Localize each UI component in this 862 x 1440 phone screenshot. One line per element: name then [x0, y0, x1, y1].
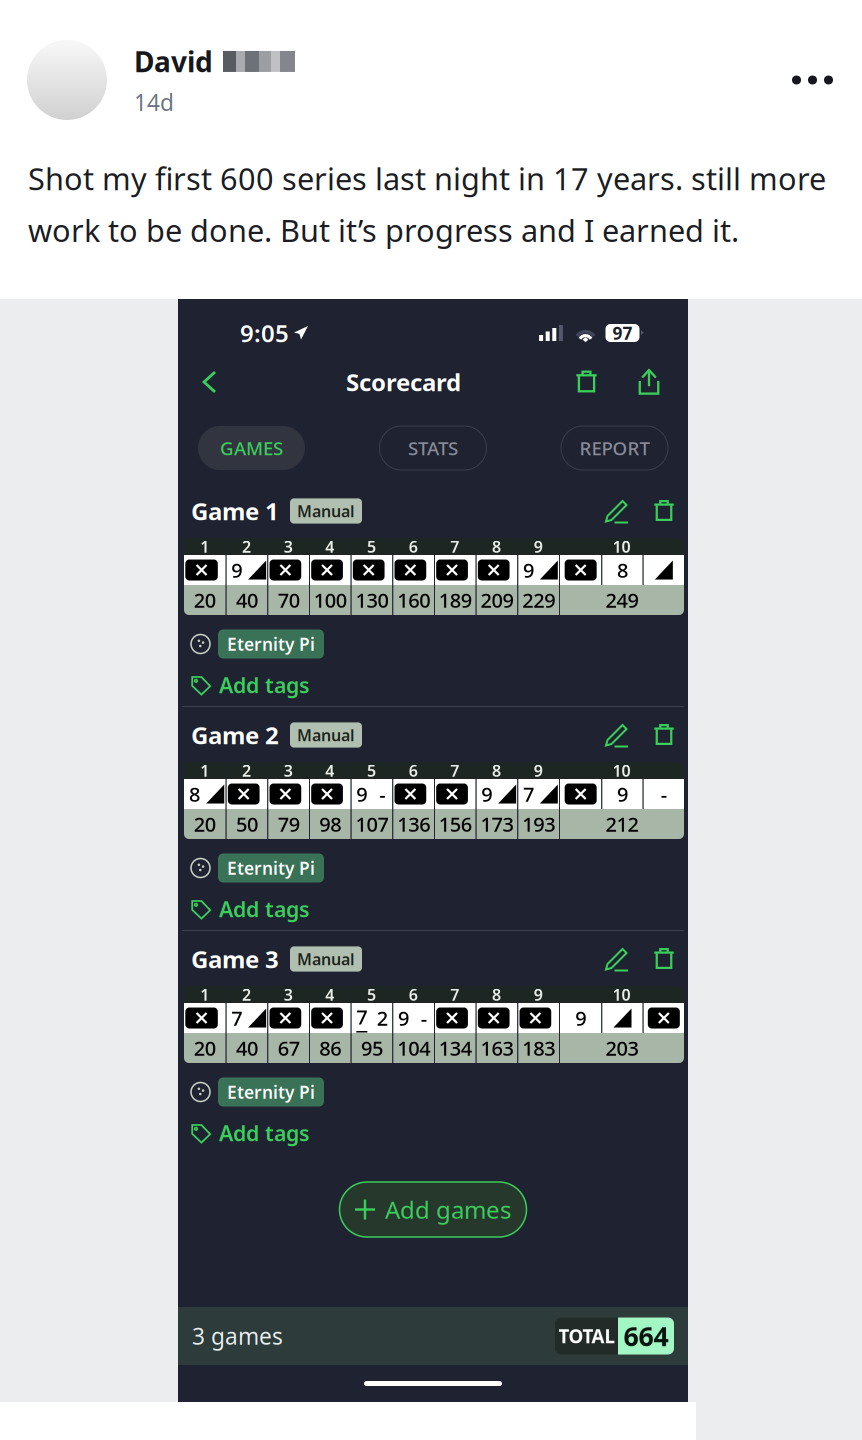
staticText: 134 — [439, 1035, 472, 1061]
staticText: Add tags — [219, 1119, 310, 1147]
button[interactable]: More options — [774, 61, 851, 98]
staticText: Manual — [297, 500, 355, 522]
staticText: 163 — [480, 1035, 513, 1061]
staticText: 4 — [325, 760, 334, 781]
staticText: 67 — [278, 1035, 300, 1061]
staticText: 40 — [236, 1035, 258, 1061]
staticText: 3 — [284, 984, 293, 1005]
staticText: 9 — [617, 781, 628, 807]
staticText: 95 — [361, 1035, 383, 1061]
staticText: Add tags — [219, 671, 310, 699]
staticText: 20 — [194, 811, 216, 837]
staticText: 7 — [450, 536, 459, 557]
staticText: 86 — [319, 1035, 341, 1061]
staticText: 8 — [617, 557, 628, 583]
staticText: 10 — [612, 984, 630, 1005]
staticText: 209 — [480, 587, 513, 613]
staticText: 98 — [319, 811, 341, 837]
staticText: TOTAL — [558, 1324, 614, 1348]
staticText: STATS — [408, 436, 458, 460]
staticText: Game 2 — [191, 719, 279, 751]
staticText: 2 — [242, 536, 251, 557]
staticText: Shot my first 600 series last night in 1… — [28, 158, 826, 199]
staticText: 5 — [367, 984, 376, 1005]
staticText: 7 — [231, 1005, 242, 1031]
button[interactable]: GAMES — [198, 426, 305, 470]
staticText: 20 — [194, 587, 216, 613]
button[interactable]: Add tags — [178, 1104, 688, 1154]
staticText: 14d — [134, 87, 174, 117]
staticText: 8 — [492, 536, 501, 557]
staticText: Eternity Pi — [227, 632, 315, 655]
staticText: 4 — [325, 536, 334, 557]
button[interactable]: Share — [638, 369, 660, 395]
staticText: 203 — [605, 1035, 638, 1061]
staticText: 130 — [355, 587, 388, 613]
staticText: 107 — [355, 811, 388, 837]
staticText: 9 — [575, 1005, 586, 1031]
staticText: 189 — [439, 587, 472, 613]
staticText: 2 — [377, 1005, 388, 1031]
staticText: 7 — [523, 781, 534, 807]
staticText: 7 — [450, 984, 459, 1005]
button[interactable]: Edit game — [604, 498, 629, 523]
staticText: David — [134, 43, 213, 80]
button[interactable]: Delete scorecard — [575, 369, 598, 395]
staticText: 5 — [367, 536, 376, 557]
staticText: 104 — [397, 1035, 430, 1061]
button[interactable]: Edit game — [604, 722, 629, 747]
staticText: 173 — [480, 811, 513, 837]
button[interactable]: Add games — [339, 1182, 526, 1237]
staticText: 3 — [284, 760, 293, 781]
staticText: 9 — [534, 760, 543, 781]
staticText: - — [379, 781, 385, 807]
staticText: 9 — [534, 536, 543, 557]
staticText: 9 — [534, 984, 543, 1005]
staticText: - — [421, 1005, 427, 1031]
staticText: Eternity Pi — [227, 1080, 315, 1103]
staticText: 1 — [200, 536, 209, 557]
staticText: 1 — [200, 760, 209, 781]
staticText: 664 — [623, 1318, 668, 1354]
staticText: 70 — [278, 587, 300, 613]
staticText: 100 — [314, 587, 347, 613]
staticText: 40 — [236, 587, 258, 613]
button[interactable]: Add tags — [178, 656, 688, 706]
staticText: 5 — [367, 760, 376, 781]
button[interactable]: Back — [178, 362, 232, 402]
staticText: 3 games — [192, 1321, 283, 1351]
button[interactable]: REPORT — [561, 426, 668, 470]
staticText: 9 — [398, 1005, 409, 1031]
staticText: Add tags — [219, 895, 310, 923]
button[interactable]: STATS — [379, 426, 486, 470]
staticText: 9 — [356, 781, 367, 807]
button[interactable]: Edit game — [604, 946, 629, 971]
staticText: 8 — [492, 984, 501, 1005]
staticText: 2 — [242, 760, 251, 781]
staticText: work to be done. But it’s progress and I… — [28, 210, 739, 250]
staticText: 193 — [522, 811, 555, 837]
staticText: 6 — [409, 536, 418, 557]
staticText: 3 — [284, 536, 293, 557]
staticText: - — [661, 781, 667, 807]
staticText: REPORT — [579, 436, 649, 460]
staticText: 2 — [242, 984, 251, 1005]
staticText: Manual — [297, 724, 355, 746]
staticText: 156 — [439, 811, 472, 837]
staticText: Eternity Pi — [227, 856, 315, 879]
staticText: Game 1 — [191, 495, 279, 527]
staticText: 50 — [236, 811, 258, 837]
staticText: 8 — [189, 781, 200, 807]
staticText: 6 — [409, 760, 418, 781]
button[interactable]: Delete game — [653, 499, 675, 523]
button[interactable]: Add tags — [178, 880, 688, 930]
staticText: 9 — [523, 557, 534, 583]
button[interactable]: Delete game — [653, 947, 675, 971]
staticText: Game 3 — [191, 943, 279, 975]
staticText: 249 — [605, 587, 638, 613]
staticText: 7 — [450, 760, 459, 781]
staticText: 160 — [397, 587, 430, 613]
staticText: Add games — [385, 1194, 511, 1225]
staticText: 4 — [325, 984, 334, 1005]
button[interactable]: Delete game — [653, 723, 675, 747]
